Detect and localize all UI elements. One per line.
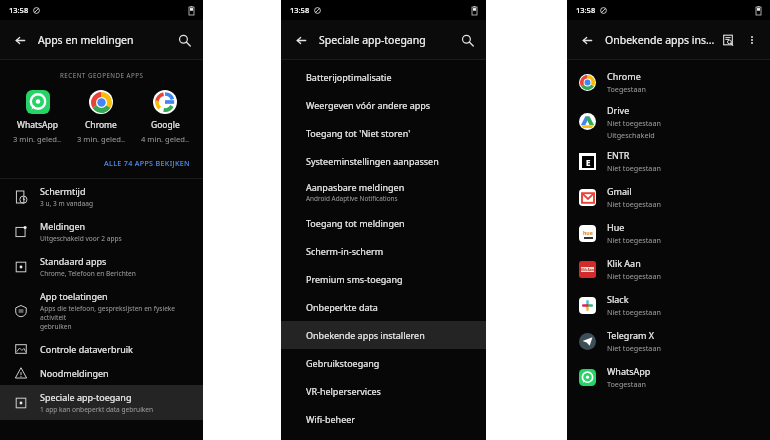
button[interactable]: Batterijoptimalisatie — [281, 63, 486, 91]
button[interactable]: Chrome — [567, 64, 770, 100]
staticText: 13:58 — [9, 5, 29, 15]
staticText: WhatsApp — [607, 365, 651, 377]
staticText: Google — [151, 119, 180, 131]
staticText: Gmail — [607, 185, 632, 197]
staticText: Niet toegestaan — [607, 271, 661, 281]
staticText: Speciale app-toegang — [40, 391, 132, 403]
button[interactable]: Toegang tot 'Niet storen' — [281, 119, 486, 147]
button[interactable]: Speciale app-toegang — [0, 385, 203, 420]
button[interactable]: Aanpasbare meldingen — [281, 175, 486, 209]
staticText: RECENT GEOPENDE APPS — [60, 71, 144, 79]
button[interactable]: Drive — [567, 100, 770, 143]
staticText: Onbeperkte data — [306, 301, 378, 313]
button[interactable]: Chrome — [69, 89, 133, 145]
button[interactable]: Standaard apps — [0, 249, 203, 284]
button[interactable]: Slack — [567, 287, 770, 323]
staticText: VR-helperservices — [306, 385, 381, 397]
button[interactable]: Show system — [718, 30, 738, 50]
staticText: Onbekende apps installeren — [605, 33, 718, 47]
staticText: Chrome — [85, 119, 117, 131]
staticText: 13:58 — [290, 5, 310, 15]
button[interactable]: WhatsApp — [6, 89, 69, 145]
button[interactable]: KlikAan — [567, 251, 770, 287]
staticText: Weergeven vóór andere apps — [306, 99, 431, 111]
staticText: Niet toegestaan — [607, 343, 661, 353]
button[interactable]: Google — [133, 89, 197, 145]
staticText: Niet toegestaan — [607, 307, 661, 317]
button[interactable]: Premium sms-toegang — [281, 265, 486, 293]
staticText: KlikAan — [581, 267, 594, 272]
staticText: Android Adaptive Notifications — [306, 194, 398, 203]
staticText: Apps die telefoon, gespreksljsten en fys… — [40, 304, 194, 331]
staticText: Niet toegestaan — [607, 235, 661, 245]
button[interactable]: E — [567, 143, 770, 179]
staticText: Chrome — [607, 70, 641, 82]
staticText: Niet toegestaan — [607, 199, 661, 209]
button[interactable]: Wifi-beheer — [281, 405, 486, 433]
button[interactable]: Toegang tot meldingen — [281, 209, 486, 237]
button[interactable]: Gmail — [567, 179, 770, 215]
button[interactable]: Meldingen — [0, 214, 203, 249]
staticText: ENTR — [607, 149, 630, 161]
staticText: Toegang tot meldingen — [306, 217, 405, 229]
staticText: Hue — [607, 221, 625, 233]
button[interactable]: Back — [290, 29, 312, 51]
button[interactable]: hue — [567, 215, 770, 251]
staticText: Uitgeschakeld voor 2 apps — [40, 234, 122, 243]
staticText: Standaard apps — [40, 255, 107, 267]
staticText: hue — [583, 229, 593, 236]
staticText: Drive — [607, 104, 630, 116]
staticText: 13:58 — [576, 5, 596, 15]
staticText: WhatsApp — [17, 119, 58, 131]
staticText: Premium sms-toegang — [306, 273, 403, 285]
button[interactable]: Weergeven vóór andere apps — [281, 91, 486, 119]
staticText: ALLE 74 APPS BEKIJKEN — [104, 158, 190, 168]
button[interactable]: Onbekende apps installeren — [281, 321, 486, 349]
button[interactable]: Scherm-in-scherm — [281, 237, 486, 265]
button[interactable]: WhatsApp — [567, 359, 770, 395]
button[interactable]: Systeeminstellingen aanpassen — [281, 147, 486, 175]
staticText: Systeeminstellingen aanpassen — [306, 155, 439, 167]
button[interactable]: App toelatingen — [0, 284, 203, 337]
staticText: 3 u, 3 m vandaag — [40, 199, 94, 208]
staticText: Niet toegestaan — [607, 118, 661, 128]
staticText: Uitgeschakeld — [607, 130, 655, 140]
button[interactable]: VR-helperservices — [281, 377, 486, 405]
staticText: Meldingen — [40, 220, 86, 232]
staticText: Gebruikstoegang — [306, 357, 380, 369]
button[interactable]: Controle dataverbruik — [0, 337, 203, 361]
staticText: Slack — [607, 293, 629, 305]
staticText: E — [586, 157, 591, 168]
staticText: App toelatingen — [40, 290, 108, 302]
button[interactable]: Noodmeldingen — [0, 361, 203, 385]
staticText: Batterijoptimalisatie — [306, 71, 392, 83]
staticText: Scherm-in-scherm — [306, 245, 384, 257]
staticText: Controle dataverbruik — [40, 343, 133, 355]
button[interactable]: Search — [173, 29, 195, 51]
staticText: Niet toegestaan — [607, 163, 661, 173]
button[interactable]: Back — [9, 29, 31, 51]
button[interactable]: Back — [576, 29, 598, 51]
staticText: Schermtijd — [40, 185, 86, 197]
staticText: 4 min. geled.. — [141, 134, 190, 144]
button[interactable]: Telegram X — [567, 323, 770, 359]
staticText: 3 min. geled.. — [77, 134, 126, 144]
staticText: Chrome, Telefoon en Berichten — [40, 269, 136, 278]
staticText: 1 app kan onbeperkt data gebruiken — [40, 405, 154, 414]
staticText: Toegestaan — [607, 379, 646, 389]
button[interactable]: Onbeperkte data — [281, 293, 486, 321]
button[interactable]: Gebruikstoegang — [281, 349, 486, 377]
button[interactable]: More options — [742, 30, 762, 50]
staticText: Toegestaan — [607, 84, 646, 94]
staticText: Onbekende apps installeren — [306, 329, 425, 341]
staticText: Klik Aan — [607, 257, 641, 269]
staticText: 3 min. geled.. — [13, 134, 62, 144]
staticText: Noodmeldingen — [40, 367, 109, 379]
staticText: Telegram X — [607, 329, 654, 341]
button[interactable]: Search — [456, 29, 478, 51]
button[interactable]: ALLE 74 APPS BEKIJKEN — [102, 156, 192, 170]
staticText: Toegang tot 'Niet storen' — [306, 127, 411, 139]
button[interactable]: Schermtijd — [0, 179, 203, 214]
staticText: Apps en meldingen — [38, 33, 173, 47]
staticText: Wifi-beheer — [306, 413, 356, 425]
